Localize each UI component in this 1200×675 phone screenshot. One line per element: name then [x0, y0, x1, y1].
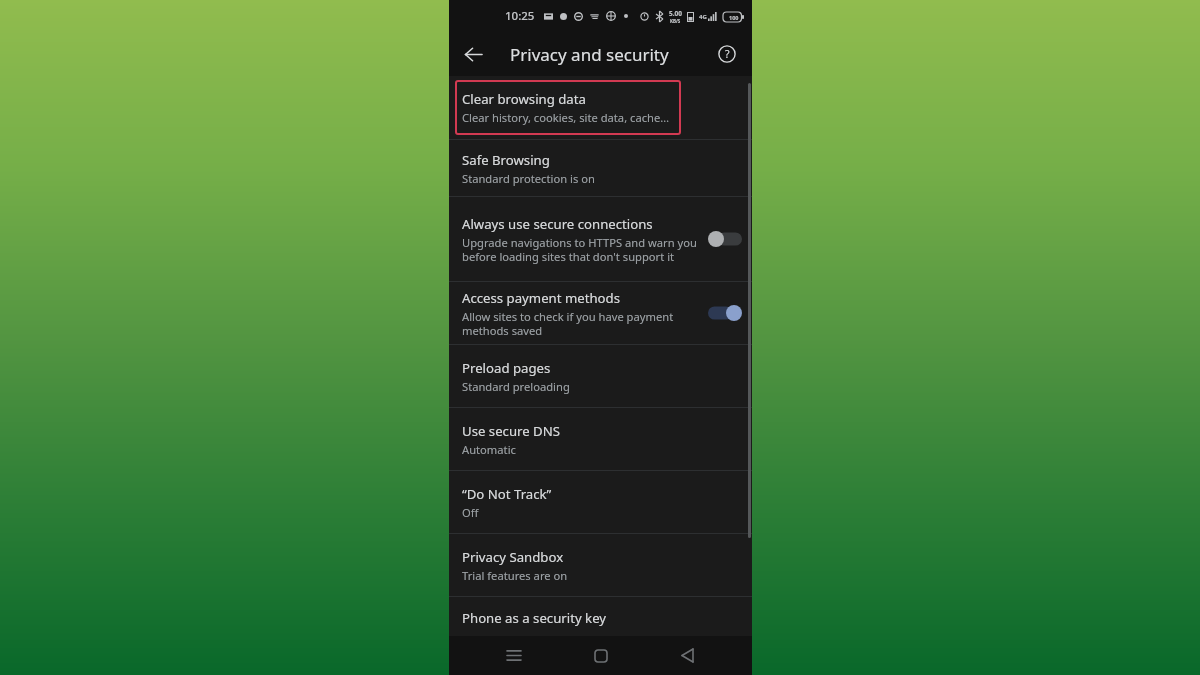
- button[interactable]: Help: [708, 35, 746, 73]
- staticText: Standard protection is on: [462, 171, 595, 186]
- staticText: Clear browsing data: [462, 90, 586, 108]
- staticText: KB/S: [670, 18, 681, 24]
- button[interactable]: Clear browsing data: [449, 76, 752, 139]
- staticText: “Do Not Track”: [462, 485, 552, 503]
- staticText: Phone as a security key: [462, 609, 607, 627]
- staticText: Preload pages: [462, 359, 551, 377]
- button[interactable]: Safe Browsing: [449, 140, 752, 196]
- staticText: Access payment methods: [462, 289, 621, 307]
- staticText: Standard preloading: [462, 379, 570, 394]
- staticText: Upgrade navigations to HTTPS and warn yo…: [462, 235, 700, 264]
- staticText: Use secure DNS: [462, 422, 560, 440]
- button[interactable]: Always use secure connections: [449, 197, 752, 281]
- staticText: Allow sites to check if you have payment…: [462, 309, 700, 338]
- staticText: Automatic: [462, 442, 516, 457]
- staticText: Clear history, cookies, site data, cache…: [462, 110, 670, 125]
- staticText: Privacy and security: [510, 43, 669, 66]
- staticText: Privacy Sandbox: [462, 548, 564, 566]
- staticText: Trial features are on: [462, 568, 568, 583]
- button[interactable]: Toggle: [708, 231, 742, 247]
- staticText: ?: [725, 47, 730, 61]
- button[interactable]: Use secure DNS: [449, 408, 752, 470]
- button[interactable]: Back: [665, 636, 709, 675]
- staticText: 10:25: [505, 8, 535, 24]
- staticText: Off: [462, 505, 479, 520]
- staticText: 5.00: [669, 9, 682, 18]
- button[interactable]: Phone as a security key: [449, 597, 752, 636]
- button[interactable]: Preload pages: [449, 345, 752, 407]
- button[interactable]: Toggle: [708, 305, 742, 321]
- staticText: Always use secure connections: [462, 215, 653, 233]
- button[interactable]: “Do Not Track”: [449, 471, 752, 533]
- staticText: 100: [729, 14, 739, 21]
- button[interactable]: Access payment methods: [449, 282, 752, 344]
- button[interactable]: Privacy Sandbox: [449, 534, 752, 596]
- button[interactable]: Recents: [492, 636, 536, 675]
- staticText: Safe Browsing: [462, 151, 550, 169]
- button[interactable]: Home: [579, 636, 623, 675]
- button[interactable]: Back: [454, 35, 492, 73]
- staticText: 4G: [699, 13, 707, 21]
